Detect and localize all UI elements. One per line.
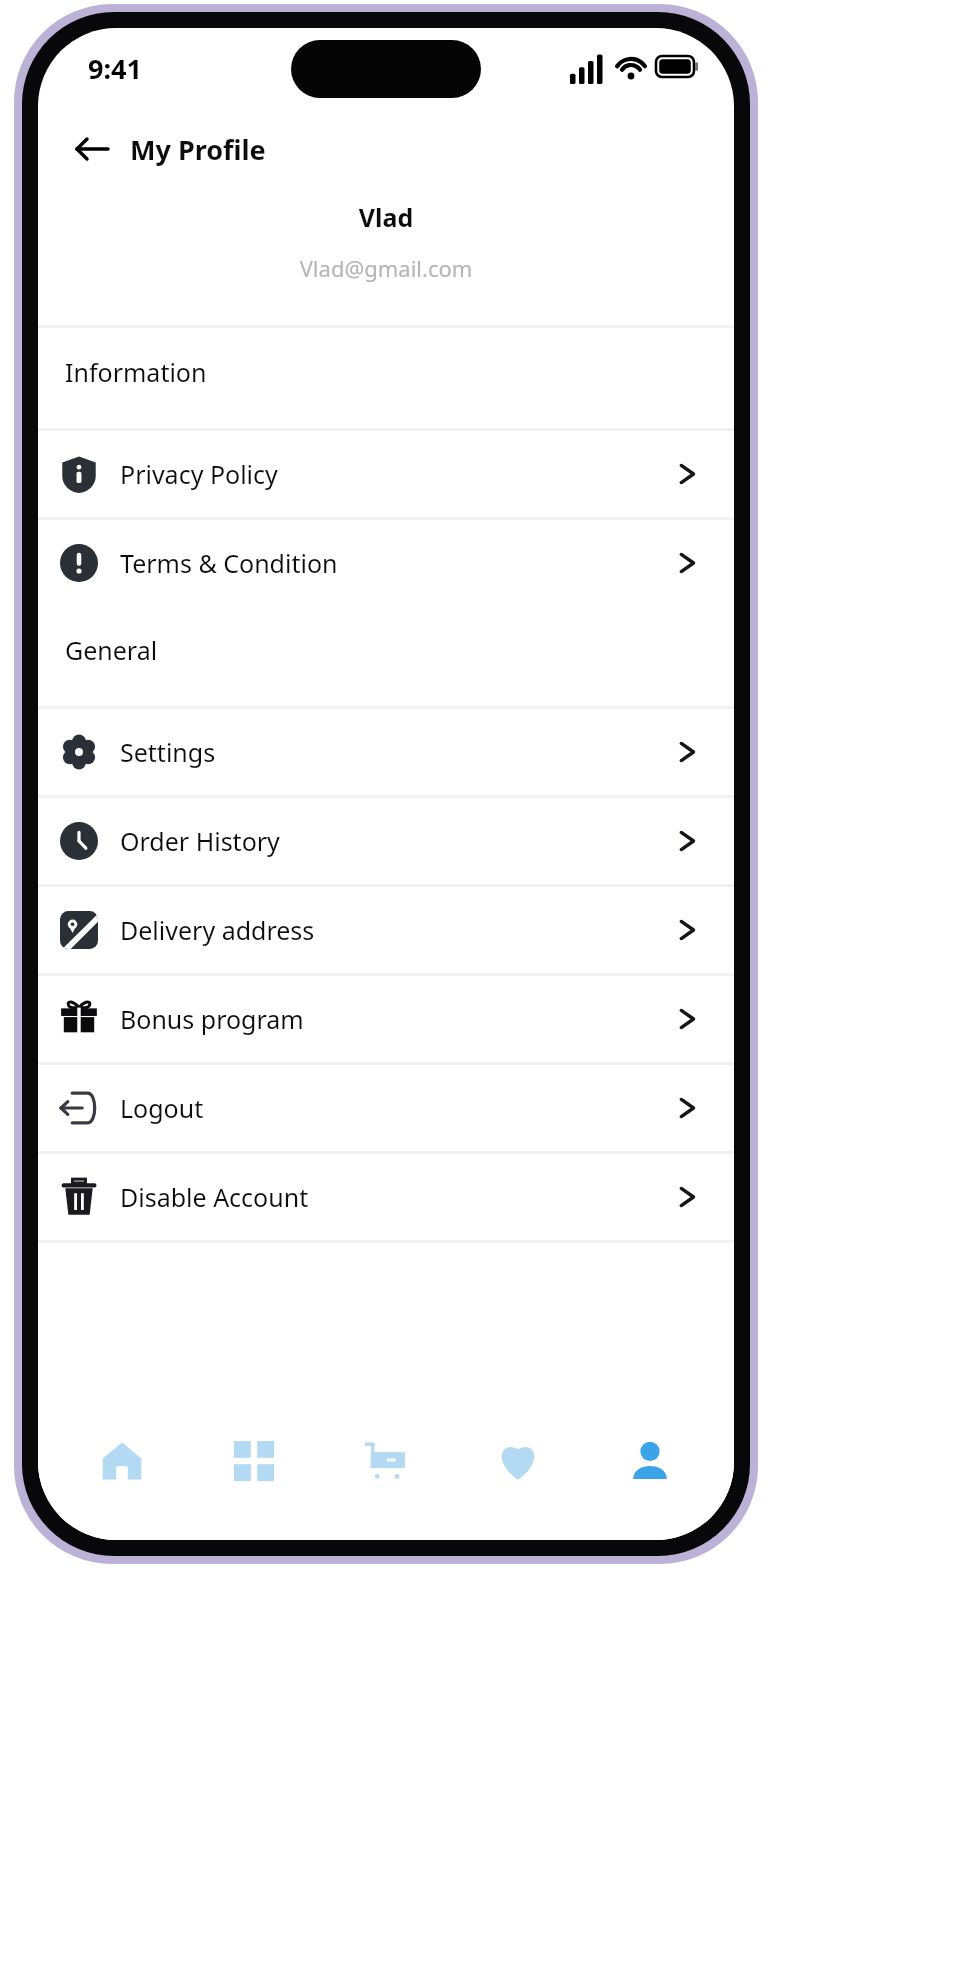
button[interactable]: Favorites bbox=[470, 1413, 566, 1509]
staticText: Bonus program bbox=[120, 1002, 674, 1036]
staticText: My Profile bbox=[130, 131, 266, 168]
button[interactable]: Privacy Policy bbox=[38, 431, 734, 517]
staticText: 9:41 bbox=[88, 50, 142, 87]
button[interactable]: Home bbox=[74, 1413, 170, 1509]
staticText: Order History bbox=[120, 824, 674, 858]
staticText: Terms & Condition bbox=[120, 546, 674, 580]
staticText: Vlad bbox=[38, 200, 734, 234]
button[interactable]: Terms & Condition bbox=[38, 520, 734, 606]
button[interactable]: Disable Account bbox=[38, 1154, 734, 1240]
staticText: Disable Account bbox=[120, 1180, 674, 1214]
button[interactable]: Profile bbox=[602, 1413, 698, 1509]
button[interactable]: Order History bbox=[38, 798, 734, 884]
staticText: Settings bbox=[120, 735, 674, 769]
button[interactable]: Logout bbox=[38, 1065, 734, 1151]
staticText: Delivery address bbox=[120, 913, 674, 947]
button[interactable]: Back bbox=[64, 121, 120, 177]
button[interactable]: Categories bbox=[206, 1413, 302, 1509]
staticText: Logout bbox=[120, 1091, 674, 1125]
button[interactable]: Cart bbox=[338, 1413, 434, 1509]
staticText: General bbox=[65, 633, 158, 667]
staticText: Information bbox=[65, 355, 207, 389]
button[interactable]: Bonus program bbox=[38, 976, 734, 1062]
button[interactable]: Settings bbox=[38, 709, 734, 795]
staticText: Privacy Policy bbox=[120, 457, 674, 491]
staticText: Vlad@gmail.com bbox=[38, 253, 734, 283]
button[interactable]: Delivery address bbox=[38, 887, 734, 973]
